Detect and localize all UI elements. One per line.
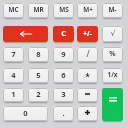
button[interactable]: 6 (53, 68, 74, 83)
button[interactable]: +/- (77, 26, 98, 42)
button[interactable]: 5 (28, 68, 49, 83)
button[interactable]: 9 (53, 47, 74, 62)
button[interactable]: * (77, 68, 98, 83)
staticText: 1 (11, 89, 16, 99)
button[interactable]: 2 (28, 88, 49, 102)
staticText: 5 (36, 70, 41, 80)
staticText: 2 (36, 89, 41, 99)
staticText: 1/x (107, 70, 118, 79)
button[interactable] (77, 88, 98, 102)
button[interactable]: 3 (53, 88, 74, 102)
staticText: 6 (61, 70, 66, 80)
staticText: MS (59, 5, 69, 14)
button[interactable]: Equals (102, 88, 123, 121)
button[interactable]: . (53, 106, 74, 121)
staticText: MC (8, 5, 19, 14)
button[interactable]: 1 (3, 88, 24, 102)
button[interactable]: 8 (28, 47, 49, 62)
staticText: 8 (36, 49, 41, 59)
staticText: 4 (11, 70, 16, 80)
button[interactable]: MR (28, 3, 49, 18)
staticText: 7 (11, 49, 16, 59)
button[interactable]: 7 (3, 47, 24, 62)
button[interactable]: M- (102, 3, 123, 18)
staticText: +/- (83, 29, 92, 38)
staticText: M- (108, 5, 117, 14)
staticText: MR (33, 5, 44, 14)
staticText: % (109, 49, 116, 59)
staticText: 0 (23, 108, 28, 118)
staticText: √ (110, 29, 116, 38)
staticText: C (61, 28, 66, 38)
button[interactable]: / (77, 47, 98, 62)
button[interactable]: M+ (77, 3, 98, 18)
button[interactable]: % (102, 47, 123, 62)
staticText: . (62, 108, 65, 118)
button[interactable]: 1/x (102, 68, 123, 83)
button[interactable]: √ (102, 26, 123, 42)
button[interactable]: MS (53, 3, 74, 18)
button[interactable]: MC (3, 3, 24, 18)
staticText: * (85, 71, 90, 83)
button[interactable]: 0 (3, 106, 48, 121)
staticText: / (86, 48, 90, 60)
button[interactable] (77, 106, 98, 121)
staticText: 3 (61, 89, 66, 99)
staticText: 9 (61, 49, 66, 59)
button[interactable]: C (53, 26, 74, 42)
button[interactable]: 4 (3, 68, 24, 83)
staticText: M+ (83, 5, 93, 14)
button[interactable]: Backspace (3, 26, 48, 42)
